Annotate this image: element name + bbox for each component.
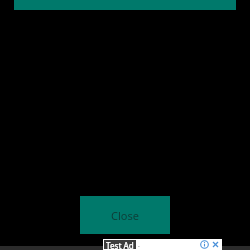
button[interactable]: Close — [80, 196, 170, 234]
staticText: Test Ad — [106, 240, 134, 249]
button[interactable]: Ad information — [200, 240, 209, 249]
staticText: . — [138, 240, 140, 250]
button[interactable]: Close ad — [211, 240, 220, 249]
button[interactable]: Test Ad — [103, 239, 222, 250]
staticText: Close — [111, 208, 139, 223]
